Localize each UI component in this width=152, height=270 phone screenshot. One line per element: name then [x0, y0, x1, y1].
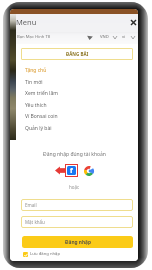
staticText: hoặc — [69, 184, 80, 190]
staticText: Email — [25, 202, 37, 208]
button[interactable]: Tặng chủ — [17, 64, 138, 76]
staticText: Tặng chủ — [25, 67, 47, 74]
button[interactable]: Lưu đăng nhập — [23, 250, 60, 258]
button[interactable]: Tin mới — [17, 76, 138, 88]
button[interactable]: Bạn Mạc Hinh T8 — [17, 32, 65, 42]
staticText: vi — [122, 34, 126, 40]
button[interactable]: Xem triển lãm — [17, 87, 138, 99]
staticText: Đăng nhập đúng tài khoản — [43, 151, 106, 158]
staticText: f — [70, 166, 73, 175]
staticText: Menu — [16, 17, 37, 27]
staticText: Yêu thích — [25, 102, 47, 109]
button[interactable]: Sign in with Facebook — [65, 164, 78, 177]
staticText: VND — [100, 34, 109, 40]
button[interactable]: Email — [21, 199, 133, 211]
button[interactable]: Close — [127, 16, 138, 29]
staticText: Đăng nhập — [65, 239, 91, 246]
button[interactable]: Ví Bonsai coin — [17, 110, 138, 122]
staticText: Ví Bonsai coin — [25, 113, 58, 120]
button[interactable]: Sign in with Google — [84, 166, 94, 176]
button[interactable]: Yêu thích — [17, 99, 138, 111]
button[interactable]: VND — [100, 32, 118, 42]
button[interactable]: Đăng nhập — [22, 236, 133, 248]
button[interactable]: Mật khẩu — [21, 216, 133, 228]
button[interactable]: Currency flag — [85, 32, 95, 42]
staticText: Bạn Mạc Hinh T8 — [17, 34, 51, 40]
button[interactable]: Quản lý bài — [17, 122, 138, 134]
button[interactable]: Menu — [16, 15, 60, 28]
staticText: Xem triển lãm — [25, 90, 58, 97]
staticText: Quản lý bài — [25, 125, 52, 132]
staticText: ĐĂNG BÀI — [66, 51, 89, 57]
staticText: Lưu đăng nhập — [30, 251, 60, 257]
staticText: Mật khẩu — [25, 219, 45, 225]
button[interactable]: vi — [122, 32, 137, 42]
button[interactable]: ĐĂNG BÀI — [21, 48, 133, 60]
staticText: Tin mới — [25, 79, 43, 86]
